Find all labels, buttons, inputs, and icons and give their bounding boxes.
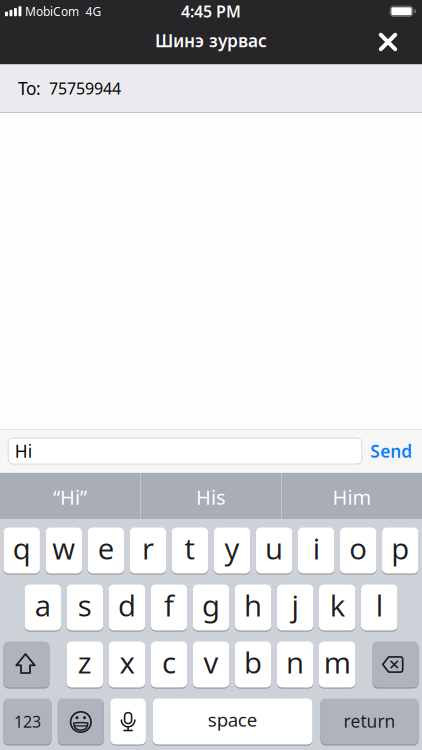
button[interactable]: b: [235, 641, 271, 688]
button[interactable]: Hi: [8, 437, 362, 464]
button[interactable]: Send: [370, 439, 412, 462]
button[interactable]: y: [214, 527, 250, 574]
staticText: l: [376, 585, 383, 625]
staticText: MobiCom: [25, 3, 79, 19]
button[interactable]: o: [340, 527, 376, 574]
staticText: g: [202, 585, 220, 625]
button[interactable]: s: [67, 584, 103, 631]
button[interactable]: w: [46, 527, 82, 574]
button[interactable]: x: [109, 641, 145, 688]
button[interactable]: h: [235, 584, 271, 631]
button[interactable]: e: [88, 527, 124, 574]
button[interactable]: u: [256, 527, 292, 574]
staticText: Him: [332, 484, 371, 510]
staticText: To:: [18, 77, 41, 100]
button[interactable]: r: [130, 527, 166, 574]
button[interactable]: d: [109, 584, 145, 631]
button[interactable]: i: [298, 527, 334, 574]
staticText: “Hi”: [53, 484, 87, 510]
staticText: q: [13, 528, 31, 568]
staticText: u: [265, 528, 283, 568]
button[interactable]: return: [320, 698, 418, 745]
staticText: k: [330, 585, 345, 625]
button[interactable]: v: [193, 641, 229, 688]
button[interactable]: m: [319, 641, 355, 688]
button[interactable]: g: [193, 584, 229, 631]
button[interactable]: 123: [3, 698, 51, 745]
staticText: r: [142, 528, 154, 568]
staticText: return: [343, 709, 395, 732]
staticText: i: [313, 528, 320, 568]
staticText: n: [286, 642, 304, 682]
staticText: space: [208, 707, 258, 732]
staticText: b: [244, 642, 262, 682]
staticText: z: [78, 642, 92, 682]
button[interactable]: [58, 698, 104, 745]
staticText: j: [292, 585, 299, 625]
staticText: o: [349, 528, 367, 568]
staticText: 4:45 PM: [181, 1, 241, 22]
button[interactable]: z: [67, 641, 103, 688]
button[interactable]: k: [319, 584, 355, 631]
button[interactable]: His: [141, 473, 281, 519]
staticText: a: [35, 585, 51, 625]
staticText: h: [244, 585, 262, 625]
staticText: d: [118, 585, 136, 625]
staticText: Шинэ зурвас: [155, 29, 267, 52]
staticText: 4G: [85, 3, 101, 19]
staticText: Hi: [15, 439, 32, 462]
button[interactable]: f: [151, 584, 187, 631]
staticText: v: [203, 642, 218, 682]
staticText: t: [184, 528, 195, 568]
button[interactable]: [3, 641, 49, 688]
staticText: f: [164, 585, 174, 625]
staticText: His: [196, 484, 226, 510]
button[interactable]: q: [3, 527, 40, 574]
button[interactable]: [379, 33, 397, 51]
button[interactable]: To:: [0, 64, 422, 112]
button[interactable]: [110, 698, 146, 745]
staticText: y: [224, 528, 239, 568]
staticText: s: [78, 585, 92, 625]
button[interactable]: a: [25, 584, 61, 631]
button[interactable]: p: [382, 527, 418, 574]
staticText: Send: [370, 439, 412, 462]
button[interactable]: j: [277, 584, 313, 631]
button[interactable]: t: [172, 527, 208, 574]
button[interactable]: l: [361, 584, 397, 631]
button[interactable]: space: [153, 698, 312, 745]
staticText: 123: [14, 711, 41, 732]
staticText: p: [391, 528, 409, 568]
staticText: 75759944: [49, 78, 121, 99]
staticText: x: [119, 642, 134, 682]
staticText: w: [52, 528, 75, 568]
button[interactable]: “Hi”: [0, 473, 140, 519]
button[interactable]: [372, 641, 418, 688]
button[interactable]: Him: [282, 473, 422, 519]
staticText: c: [162, 642, 176, 682]
button[interactable]: c: [151, 641, 187, 688]
staticText: m: [324, 642, 351, 682]
staticText: e: [98, 528, 114, 568]
button[interactable]: n: [277, 641, 313, 688]
